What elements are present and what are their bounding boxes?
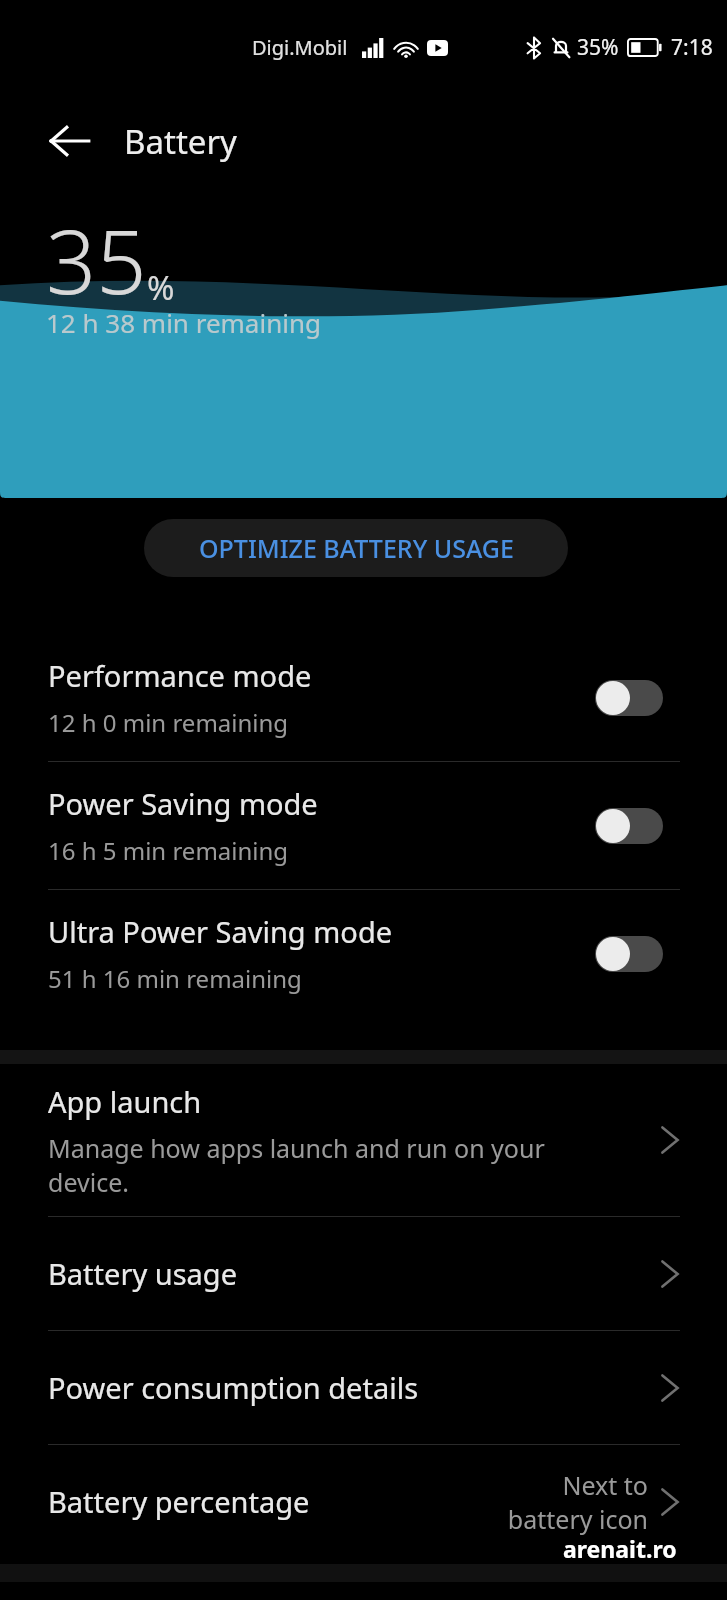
staticText: Next to battery icon — [507, 1468, 648, 1536]
button[interactable]: Performance mode — [0, 634, 727, 761]
other: Toggle — [595, 808, 663, 844]
button[interactable]: Battery percentage — [0, 1445, 727, 1558]
staticText: Battery percentage — [48, 1482, 310, 1521]
button[interactable]: Power consumption details — [0, 1331, 727, 1444]
button[interactable]: Power Saving mode — [0, 762, 727, 889]
staticText: Performance mode — [48, 656, 312, 695]
button[interactable]: Battery usage — [0, 1217, 727, 1330]
staticText: 12 h 38 min remaining — [46, 305, 322, 340]
staticText: % — [147, 265, 175, 310]
staticText: 35 — [46, 200, 147, 320]
staticText: arenait.ro — [563, 1533, 677, 1564]
staticText: 7:18 — [671, 33, 713, 62]
staticText: Manage how apps launch and run on your d… — [48, 1131, 545, 1199]
staticText: 16 h 5 min remaining — [48, 834, 289, 867]
staticText: 51 h 16 min remaining — [48, 962, 302, 995]
other: Toggle — [595, 936, 663, 972]
button[interactable]: App launch — [0, 1064, 727, 1216]
staticText: App launch — [48, 1082, 202, 1121]
staticText: Digi.Mobil — [252, 34, 348, 61]
button[interactable]: Back — [34, 105, 106, 177]
other: Toggle — [595, 680, 663, 716]
staticText: 35% — [577, 33, 619, 62]
staticText: Power Saving mode — [48, 784, 318, 823]
staticText: Power consumption details — [48, 1368, 419, 1407]
button[interactable]: OPTIMIZE BATTERY USAGE — [144, 519, 568, 577]
staticText: OPTIMIZE BATTERY USAGE — [199, 531, 514, 565]
staticText: Battery usage — [48, 1254, 237, 1293]
staticText: 12 h 0 min remaining — [48, 706, 289, 739]
button[interactable]: Ultra Power Saving mode — [0, 890, 727, 1017]
staticText: Battery — [124, 119, 237, 164]
staticText: Ultra Power Saving mode — [48, 912, 393, 951]
